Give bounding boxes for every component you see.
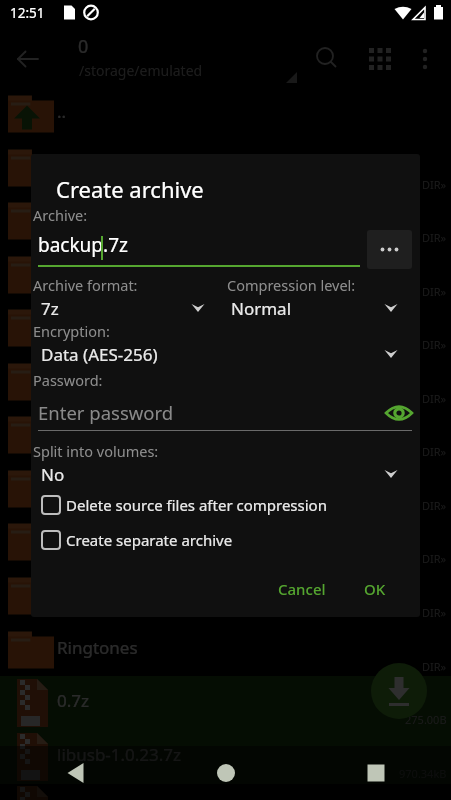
- button[interactable]: Notifications: [0, 515, 451, 569]
- staticText: Enter password: [38, 400, 174, 425]
- button[interactable]: Create separate archive: [35, 525, 233, 555]
- staticText: DIR»: [422, 498, 447, 513]
- staticText: DIR»: [422, 605, 447, 620]
- staticText: DCIM: [57, 261, 102, 284]
- staticText: Create archive: [56, 174, 204, 204]
- button[interactable]: Show password: [382, 396, 416, 430]
- staticText: Compression level:: [227, 275, 356, 295]
- button[interactable]: OK: [351, 572, 399, 606]
- staticText: /storage/emulated: [79, 61, 203, 80]
- staticText: Ringtones: [57, 636, 138, 659]
- staticText: Create separate archive: [66, 530, 233, 550]
- staticText: Archive format:: [33, 275, 138, 295]
- button[interactable]: Grid view: [358, 37, 402, 81]
- staticText: Password:: [33, 370, 103, 390]
- staticText: Music: [57, 475, 104, 498]
- button[interactable]: Cancel: [265, 572, 339, 606]
- button[interactable]: More options: [405, 39, 445, 79]
- button[interactable]: Browse: [367, 230, 412, 269]
- staticText: Archive:: [33, 205, 88, 225]
- staticText: DIR»: [422, 659, 447, 674]
- staticText: No: [41, 463, 65, 486]
- staticText: Delete source files after compression: [66, 495, 327, 515]
- button[interactable]: Alarms: [0, 141, 451, 195]
- button[interactable]: Recent apps: [301, 746, 451, 800]
- staticText: DIR»: [422, 391, 447, 406]
- staticText: Split into volumes:: [33, 441, 159, 461]
- button[interactable]: ..: [0, 87, 451, 141]
- staticText: Cancel: [278, 579, 326, 599]
- staticText: Normal: [231, 297, 292, 320]
- staticText: Notifications: [57, 528, 159, 551]
- staticText: Download: [57, 368, 138, 391]
- button[interactable]: Back: [4, 35, 52, 83]
- staticText: Movies: [57, 421, 114, 444]
- staticText: libusb-1.0.23.7z: [57, 743, 182, 766]
- button[interactable]: archive.zip: [0, 783, 451, 800]
- button[interactable]: Pictures: [0, 569, 451, 623]
- button[interactable]: Documents: [0, 301, 451, 355]
- staticText: DIR»: [422, 230, 447, 245]
- staticText: Documents: [57, 314, 149, 337]
- button[interactable]: libusb-1.0.23.7z: [0, 730, 451, 784]
- staticText: DIR»: [422, 551, 447, 566]
- staticText: 7z: [41, 297, 59, 320]
- button[interactable]: DCIM: [0, 248, 451, 302]
- button[interactable]: Movies: [0, 408, 451, 462]
- button[interactable]: Back: [0, 746, 151, 800]
- staticText: Android: [57, 207, 121, 230]
- staticText: DIR»: [422, 177, 447, 192]
- button[interactable]: Home: [151, 746, 301, 800]
- staticText: 275.00B: [405, 712, 447, 727]
- staticText: ..: [57, 100, 67, 123]
- button[interactable]: Download: [0, 355, 451, 409]
- button[interactable]: Search: [305, 37, 349, 81]
- staticText: OK: [364, 579, 386, 599]
- button[interactable]: Download: [371, 663, 427, 719]
- button[interactable]: Ringtones: [0, 623, 451, 677]
- staticText: DIR»: [422, 444, 447, 459]
- staticText: 970.34kB: [399, 766, 447, 781]
- staticText: Data (AES-256): [41, 343, 158, 366]
- staticText: 12:51: [10, 4, 45, 22]
- staticText: Encryption:: [33, 321, 110, 341]
- button[interactable]: 0.7z: [0, 676, 451, 730]
- staticText: DIR»: [422, 284, 447, 299]
- button[interactable]: Music: [0, 462, 451, 516]
- button[interactable]: Android: [0, 194, 451, 248]
- button[interactable]: Delete source files after compression: [35, 490, 327, 520]
- staticText: backup.7z: [38, 232, 128, 258]
- staticText: DIR»: [422, 337, 447, 352]
- staticText: 0.7z: [57, 689, 89, 712]
- staticText: 0: [78, 34, 89, 59]
